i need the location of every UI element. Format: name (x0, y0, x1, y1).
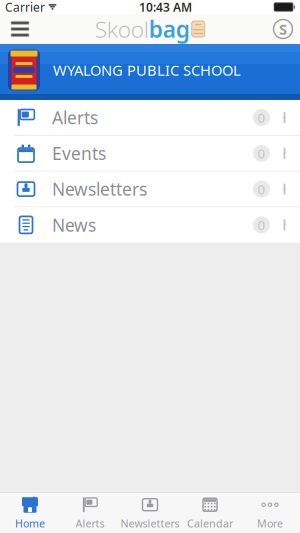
staticText: Skool (95, 14, 149, 44)
staticText: Alerts (75, 516, 104, 530)
staticText: 10:43 AM (139, 0, 192, 15)
staticText: Newsletters (120, 516, 179, 530)
button[interactable]: Calendar (180, 493, 240, 533)
staticText: WYALONG PUBLIC SCHOOL (53, 60, 241, 80)
staticText: 0 (257, 216, 265, 234)
staticText: Home (15, 516, 45, 530)
button[interactable]: Newsletters (0, 172, 300, 207)
button[interactable]: Menu (0, 14, 40, 44)
staticText: News (52, 213, 96, 236)
staticText: bag (149, 14, 190, 44)
staticText: Calendar (187, 516, 233, 530)
staticText: Events (52, 142, 106, 165)
button[interactable]: Home (0, 493, 60, 533)
staticText: 0 (257, 144, 265, 162)
staticText: S (279, 19, 287, 39)
button[interactable]: Alerts (0, 100, 300, 135)
staticText: 0 (257, 180, 265, 198)
staticText: Carrier (5, 0, 45, 15)
button[interactable]: Alerts (60, 493, 120, 533)
button[interactable]: Skoolbag (266, 14, 300, 44)
button[interactable]: News (0, 207, 300, 242)
button[interactable]: More (240, 493, 300, 533)
staticText: 0 (257, 109, 265, 126)
staticText: Newsletters (52, 178, 147, 201)
staticText: Alerts (52, 106, 98, 129)
button[interactable]: Events (0, 136, 300, 171)
staticText: More (257, 516, 283, 530)
button[interactable]: WYALONG PUBLIC SCHOOL (0, 44, 300, 100)
button[interactable]: Newsletters (120, 493, 180, 533)
